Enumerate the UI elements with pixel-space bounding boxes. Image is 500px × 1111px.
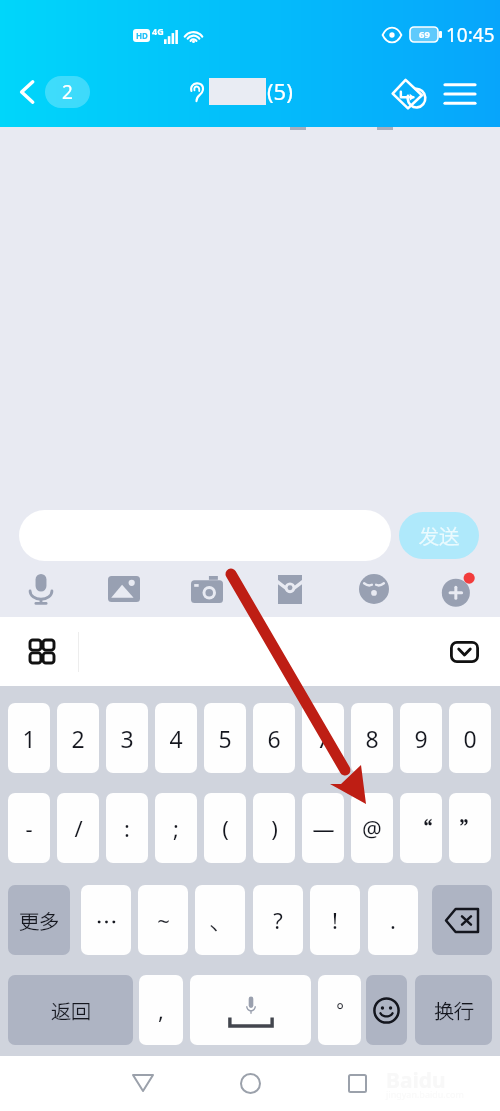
staticText: 2	[71, 723, 85, 754]
button[interactable]: —	[302, 793, 344, 863]
button[interactable]: Camera	[181, 564, 233, 614]
button[interactable]: °	[318, 975, 361, 1045]
staticText: 2	[62, 79, 73, 105]
button[interactable]: Message input	[19, 510, 391, 561]
staticText: 返回	[51, 996, 91, 1025]
staticText: ,	[158, 995, 164, 1025]
staticText: HD	[136, 30, 148, 41]
button[interactable]: 4	[155, 703, 197, 773]
button[interactable]: -	[8, 793, 50, 863]
button[interactable]: /	[57, 793, 99, 863]
button[interactable]: .	[368, 885, 418, 955]
staticText: 4G	[152, 25, 164, 37]
staticText: 更多	[19, 906, 59, 935]
staticText: @	[362, 813, 382, 843]
button[interactable]: Hide keyboard	[440, 628, 488, 675]
button[interactable]: Back	[12, 72, 96, 112]
other: Back	[18, 77, 36, 107]
staticText: ⋯	[95, 904, 118, 936]
button[interactable]: “	[400, 793, 442, 863]
button[interactable]: 1	[8, 703, 50, 773]
button[interactable]: Voice message	[15, 564, 67, 614]
button[interactable]: 6	[253, 703, 295, 773]
staticText: 6	[267, 723, 281, 754]
button[interactable]: 3	[106, 703, 148, 773]
staticText: 5	[218, 723, 232, 754]
staticText: (	[222, 813, 229, 843]
staticText: °	[336, 998, 344, 1023]
staticText: —	[312, 813, 335, 843]
button[interactable]: More	[432, 564, 484, 614]
button[interactable]: 更多	[8, 885, 70, 955]
button[interactable]: (	[204, 793, 246, 863]
button[interactable]: Back	[114, 1063, 172, 1103]
button[interactable]: Home	[221, 1063, 279, 1103]
staticText: )	[271, 813, 278, 843]
button[interactable]	[432, 885, 492, 955]
button[interactable]: 8	[351, 703, 393, 773]
staticText: 69	[419, 28, 430, 41]
staticText: 换行	[434, 996, 474, 1025]
button[interactable]: 0	[449, 703, 491, 773]
button[interactable]	[190, 975, 311, 1045]
staticText: /	[74, 813, 83, 843]
button[interactable]: Emoji	[348, 564, 400, 614]
staticText: 3	[120, 723, 134, 754]
button[interactable]: 发送	[399, 512, 479, 559]
staticText: 、	[209, 904, 232, 936]
staticText: !	[332, 905, 338, 935]
staticText: ~	[157, 905, 170, 935]
button[interactable]: 9	[400, 703, 442, 773]
button[interactable]	[366, 975, 407, 1045]
staticText: :	[124, 813, 130, 843]
staticText: 8	[365, 723, 379, 754]
button[interactable]: 、	[195, 885, 245, 955]
button[interactable]: )	[253, 793, 295, 863]
button[interactable]: ,	[139, 975, 183, 1045]
staticText: 4	[169, 723, 183, 754]
button[interactable]: Revoke message	[390, 75, 428, 113]
button[interactable]: Mail	[264, 564, 316, 614]
button[interactable]: 2	[57, 703, 99, 773]
staticText: 9	[414, 723, 428, 754]
staticText: -	[25, 813, 33, 843]
button[interactable]: ?	[253, 885, 303, 955]
button[interactable]: 换行	[415, 975, 492, 1045]
button[interactable]: 7	[302, 703, 344, 773]
button[interactable]: :	[106, 793, 148, 863]
button[interactable]: ;	[155, 793, 197, 863]
button[interactable]: @	[351, 793, 393, 863]
staticText: 1	[22, 723, 36, 754]
staticText: 0	[463, 723, 477, 754]
button[interactable]: 返回	[8, 975, 133, 1045]
button[interactable]: Recent apps	[328, 1063, 386, 1103]
staticText: 7	[316, 723, 330, 754]
button[interactable]: ~	[138, 885, 188, 955]
button[interactable]: Menu	[442, 78, 478, 110]
staticText: ”	[459, 812, 482, 844]
staticText: .	[390, 905, 396, 935]
staticText: 发送	[419, 521, 459, 550]
staticText: ;	[173, 813, 179, 843]
staticText: ?	[273, 905, 283, 935]
staticText: 10:45	[446, 22, 495, 48]
button[interactable]: Photo	[98, 564, 150, 614]
button[interactable]: Keyboard layout	[18, 628, 66, 675]
staticText: (5)	[267, 76, 293, 106]
button[interactable]: 5	[204, 703, 246, 773]
button[interactable]: ”	[449, 793, 491, 863]
staticText: “	[410, 812, 433, 844]
button[interactable]: ⋯	[81, 885, 131, 955]
button[interactable]: !	[310, 885, 360, 955]
